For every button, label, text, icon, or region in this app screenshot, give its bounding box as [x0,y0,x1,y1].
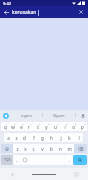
staticText: o [72,124,75,130]
staticText: p [81,124,84,130]
staticText: k [68,135,71,141]
staticText: 3 [22,122,24,125]
staticText: b [50,146,53,152]
button[interactable]: x [21,144,29,153]
button[interactable]: y [42,122,51,131]
button[interactable]: o [69,122,78,131]
staticText: l [78,135,80,141]
button[interactable]: v [38,144,47,153]
staticText: v [41,146,44,152]
staticText: Ngam [53,113,65,118]
staticText: t [37,124,39,130]
button[interactable]: Clear search [77,8,85,16]
button[interactable]: b [47,144,56,153]
staticText: u [54,124,57,130]
button[interactable]: s [12,133,20,142]
button[interactable]: Ngam [43,110,75,120]
button[interactable]: w [9,122,17,131]
button[interactable]: i [60,122,69,131]
staticText: q [4,124,7,130]
staticText: i [64,124,66,130]
button[interactable]: Google assistant [2,112,9,119]
button[interactable]: ngam [11,110,42,120]
staticText: h [50,135,53,141]
button[interactable]: h [47,133,56,142]
staticText: m [67,146,72,152]
button[interactable]: , [13,155,21,165]
staticText: 2 [14,122,16,125]
button[interactable]: Emoji [21,155,29,165]
button[interactable]: l [74,133,83,142]
button[interactable]: r [25,122,33,131]
button[interactable]: m [65,144,74,153]
button[interactable]: j [56,133,65,142]
staticText: 5 [39,122,41,125]
button[interactable]: c [29,144,38,153]
staticText: 8 [66,122,68,125]
staticText: ?123 [4,158,11,162]
staticText: 6 [48,122,50,125]
staticText: 0 [84,122,86,125]
button[interactable]: p [78,122,87,131]
staticText: 1 [6,122,8,125]
staticText: 9:42 [3,1,11,6]
staticText: 9 [75,122,77,125]
button[interactable]: f [29,133,38,142]
button[interactable]: n [56,144,65,153]
staticText: kerusakan [12,9,37,16]
staticText: z [16,146,19,152]
button[interactable]: q [1,122,9,131]
staticText: e [20,124,23,130]
button[interactable]: Shift [1,144,13,153]
staticText: w [11,124,15,130]
button[interactable]: Home [31,170,57,178]
staticText: j [60,135,62,141]
staticText: c [32,146,35,152]
button[interactable]: Voice input [79,112,86,119]
staticText: f [33,135,35,141]
button[interactable]: Back [8,170,16,178]
button[interactable]: t [33,122,42,131]
staticText: s [15,135,18,141]
button[interactable]: Back [3,9,10,16]
staticText: x [24,146,27,152]
staticText: 4 [30,122,32,125]
staticText: . [68,157,70,163]
button[interactable]: k [65,133,74,142]
staticText: a [7,135,10,141]
staticText: 7 [57,122,59,125]
button[interactable]: u [51,122,60,131]
button[interactable]: Recent apps [72,170,80,178]
button[interactable]: . [65,155,73,165]
button[interactable]: ?123 [1,155,13,165]
button[interactable]: a [4,133,12,142]
staticText: y [45,124,48,130]
staticText: r [28,124,30,130]
staticText: , [16,157,18,163]
staticText: ngam [21,113,32,118]
button[interactable]: z [13,144,21,153]
button[interactable]: Search [73,155,87,165]
staticText: d [23,135,26,141]
button[interactable]: e [17,122,25,131]
button[interactable]: Backspace [74,144,87,153]
button[interactable]: d [20,133,29,142]
staticText: g [41,135,44,141]
staticText: n [59,146,62,152]
button[interactable]: g [38,133,47,142]
